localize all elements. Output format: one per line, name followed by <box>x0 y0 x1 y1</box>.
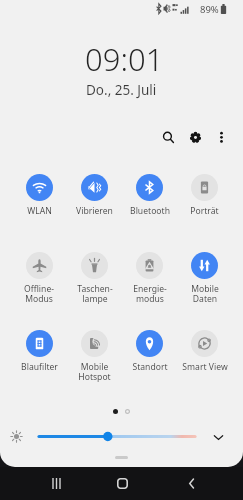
button[interactable]: Standort <box>122 330 177 373</box>
button[interactable]: Vibrieren <box>67 174 122 217</box>
button[interactable]: Bluetooth <box>122 174 177 217</box>
button[interactable]: Letzte Apps <box>39 467 74 500</box>
staticText: Vibrieren <box>76 205 113 217</box>
staticText: Smart View <box>182 361 228 373</box>
staticText: WLAN <box>27 205 52 217</box>
button[interactable]: Energie- modus <box>122 252 177 304</box>
staticText: Standort <box>132 361 168 373</box>
button[interactable]: Weitere Optionen <box>212 128 230 146</box>
button[interactable]: Erweitern <box>209 428 228 447</box>
button[interactable]: Startbildschirm <box>105 467 140 500</box>
button[interactable]: Zurück <box>174 467 209 500</box>
button[interactable]: Smart View <box>177 330 232 373</box>
button[interactable]: Taschen- lampe <box>67 252 122 304</box>
button[interactable]: Mobile Hotspot <box>67 330 122 382</box>
button[interactable]: WLAN <box>11 174 67 217</box>
staticText: Porträt <box>190 205 219 217</box>
button[interactable]: Suchen <box>159 128 177 146</box>
staticText: Mobile Hotspot <box>78 361 111 382</box>
staticText: Mobile Daten <box>191 283 219 304</box>
staticText: 89% <box>200 3 219 16</box>
staticText: Taschen- lampe <box>77 283 113 304</box>
staticText: Energie- modus <box>133 283 167 304</box>
button[interactable]: Blaufilter <box>11 330 67 373</box>
button[interactable]: Offline- Modus <box>11 252 67 304</box>
staticText: Do., 25. Juli <box>86 81 157 99</box>
staticText: 09:01 <box>85 38 164 80</box>
button[interactable]: Porträt <box>177 174 232 217</box>
button[interactable]: Mobile Daten <box>177 252 232 304</box>
button[interactable]: Einstellungen <box>186 128 204 146</box>
staticText: Blaufilter <box>21 361 58 373</box>
staticText: Bluetooth <box>130 205 170 217</box>
staticText: Offline- Modus <box>24 283 54 304</box>
